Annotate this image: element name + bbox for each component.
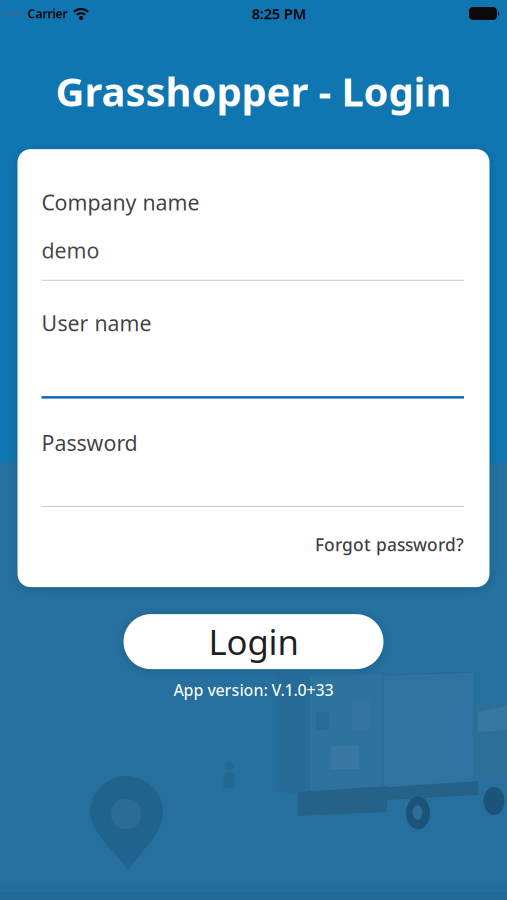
staticText: Grasshopper - Login: [55, 64, 451, 118]
staticText: 8:25 PM: [252, 4, 307, 23]
staticText: Login: [208, 619, 298, 665]
staticText: Company name: [41, 188, 199, 216]
staticText: Password: [41, 429, 137, 457]
button[interactable]: Forgot password?: [315, 533, 464, 556]
staticText: Carrier: [27, 5, 67, 21]
staticText: User name: [41, 309, 151, 337]
staticText: Forgot password?: [315, 533, 464, 556]
staticText: demo: [41, 236, 99, 264]
staticText: App version: V.1.0+33: [173, 679, 333, 700]
button[interactable]: Login: [123, 614, 383, 669]
